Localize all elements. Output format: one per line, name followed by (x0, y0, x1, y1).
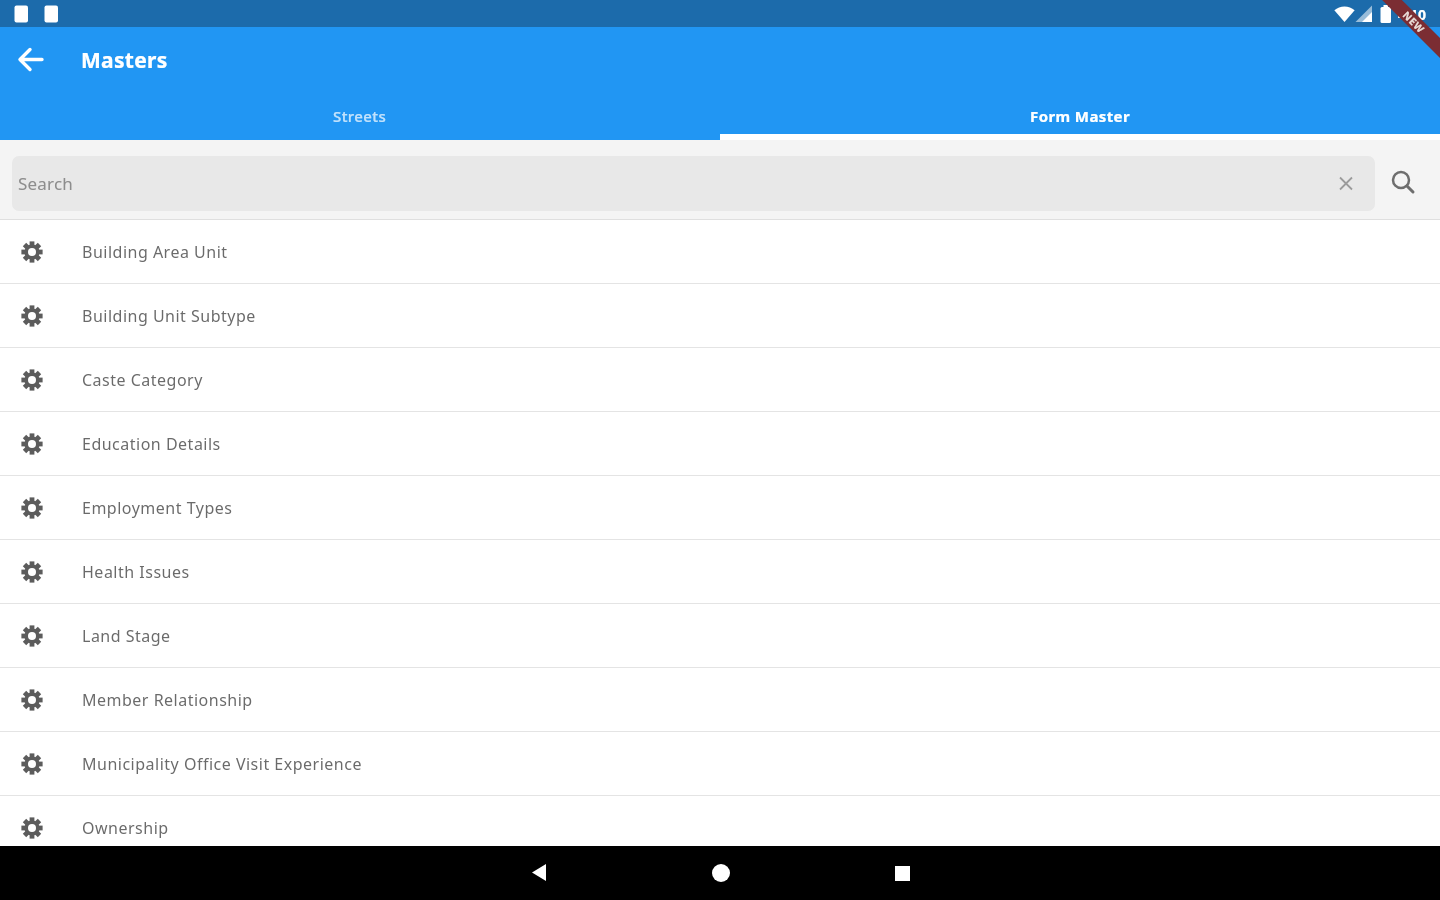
staticText: NEW (1400, 8, 1428, 36)
staticText: Land Stage (82, 625, 171, 647)
button[interactable]: NEW (1354, 0, 1440, 82)
button[interactable] (509, 846, 569, 900)
staticText: Caste Category (82, 369, 203, 391)
button[interactable]: Employment Types (0, 476, 1440, 540)
button[interactable]: Form Master (720, 92, 1440, 140)
button[interactable] (872, 846, 932, 900)
button[interactable]: Municipality Office Visit Experience (0, 732, 1440, 796)
button[interactable]: Caste Category (0, 348, 1440, 412)
staticText: Masters (81, 46, 168, 75)
staticText: Ownership (82, 817, 169, 839)
button[interactable]: Search (12, 156, 1375, 211)
staticText: Streets (333, 106, 387, 126)
button[interactable]: Streets (0, 92, 720, 140)
staticText: Education Details (82, 433, 221, 455)
staticText: Employment Types (82, 497, 233, 519)
button[interactable]: Health Issues (0, 540, 1440, 604)
staticText: Member Relationship (82, 689, 253, 711)
button[interactable]: Land Stage (0, 604, 1440, 668)
staticText: 4:10 (1398, 5, 1426, 24)
button[interactable]: Member Relationship (0, 668, 1440, 732)
staticText: Municipality Office Visit Experience (82, 753, 362, 775)
staticText: Form Master (1030, 106, 1131, 126)
button[interactable]: Ownership (0, 796, 1440, 860)
button[interactable]: Education Details (0, 412, 1440, 476)
staticText: Building Unit Subtype (82, 305, 256, 327)
button[interactable] (16, 44, 46, 74)
button[interactable]: Building Unit Subtype (0, 284, 1440, 348)
button[interactable] (1386, 167, 1416, 197)
button[interactable] (691, 846, 751, 900)
button[interactable]: Building Area Unit (0, 220, 1440, 284)
staticText: Building Area Unit (82, 241, 228, 263)
staticText: Health Issues (82, 561, 190, 583)
staticText: Search (18, 172, 74, 195)
